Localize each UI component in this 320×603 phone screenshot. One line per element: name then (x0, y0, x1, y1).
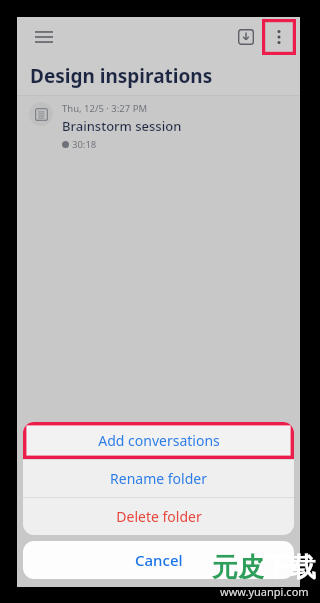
staticText: Delete folder (116, 507, 202, 526)
button[interactable]: More options (262, 19, 296, 55)
staticText: Add conversations (98, 431, 220, 450)
button[interactable]: Delete folder (23, 498, 294, 535)
button[interactable]: Cancel (23, 541, 294, 579)
staticText: 30:18 (72, 138, 97, 151)
button[interactable]: Download (230, 21, 262, 53)
button[interactable]: Add conversations (23, 422, 294, 459)
staticText: Brainstorm session (62, 117, 182, 135)
staticText: Cancel (135, 550, 183, 570)
staticText: 元皮 (212, 551, 264, 584)
staticText: 下载 (264, 551, 316, 584)
staticText: www.yuanpi.com (220, 584, 309, 599)
staticText: Design inspirations (30, 63, 213, 89)
staticText: Rename folder (110, 469, 207, 488)
button[interactable]: Menu (27, 20, 61, 54)
staticText: Thu, 12/5 · 3:27 PM (62, 102, 148, 115)
button[interactable]: Rename folder (23, 460, 294, 497)
button[interactable]: Thu, 12/5 · 3:27 PM (17, 96, 300, 158)
